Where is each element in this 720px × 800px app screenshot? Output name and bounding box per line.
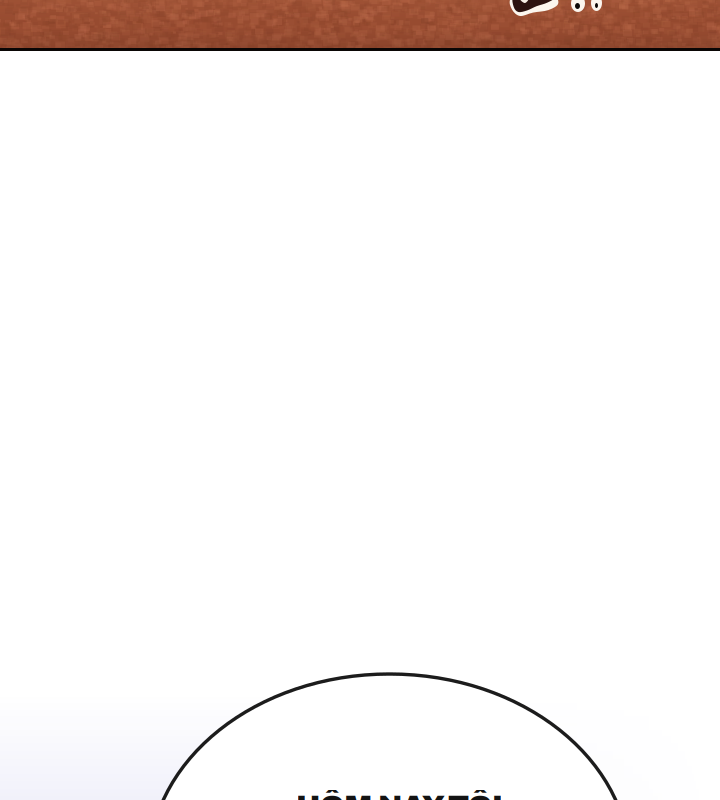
staticText: HÔM NAY TÔI xyxy=(296,790,503,800)
